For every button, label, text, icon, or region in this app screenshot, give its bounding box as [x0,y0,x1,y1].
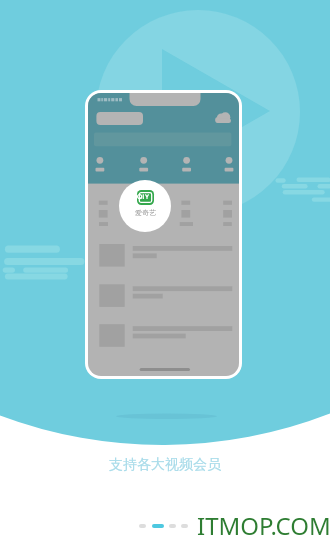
staticText: ITMOP.COM [197,509,330,542]
staticText: 爱奇艺 [135,208,156,217]
button[interactable]: 爱奇艺 [119,180,171,232]
staticText: 支持各大视频会员 [0,456,330,474]
